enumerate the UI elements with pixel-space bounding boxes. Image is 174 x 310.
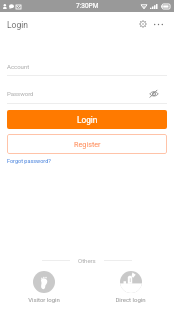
staticText: Login bbox=[7, 20, 28, 30]
button[interactable]: Login bbox=[7, 110, 167, 129]
staticText: Visitor login bbox=[28, 296, 60, 303]
button[interactable]: Visitor login bbox=[0, 271, 87, 303]
staticText: Login bbox=[77, 115, 98, 125]
button[interactable]: Forgot password? bbox=[7, 158, 51, 164]
staticText: Forgot password? bbox=[7, 158, 51, 164]
button[interactable]: More options bbox=[151, 17, 165, 31]
staticText: Others bbox=[78, 257, 96, 264]
staticText: Direct login bbox=[115, 296, 146, 303]
staticText: Password bbox=[7, 90, 34, 97]
button[interactable]: Show password bbox=[146, 85, 162, 101]
button[interactable]: Settings bbox=[136, 17, 150, 31]
staticText: 7:30PM bbox=[76, 2, 99, 10]
staticText: Account bbox=[7, 63, 30, 70]
button[interactable]: Direct login bbox=[87, 271, 174, 303]
staticText: Register bbox=[74, 140, 101, 148]
button[interactable]: Register bbox=[7, 134, 167, 154]
